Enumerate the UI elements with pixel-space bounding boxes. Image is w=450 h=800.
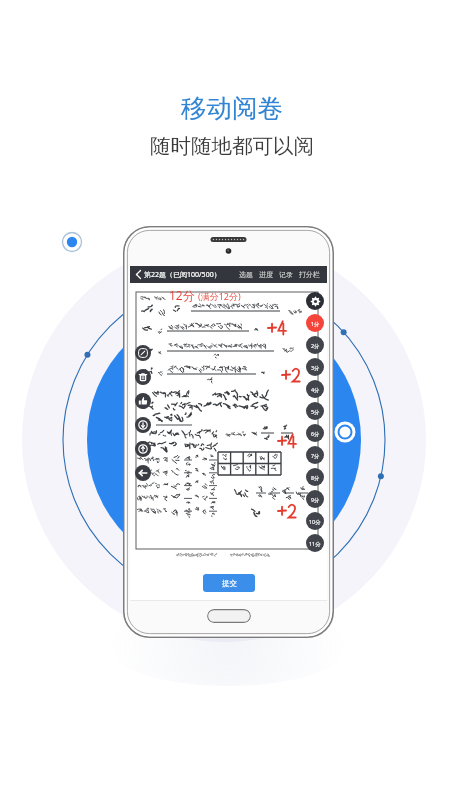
button[interactable]: Back — [135, 465, 151, 481]
button[interactable]: Settings — [306, 292, 324, 310]
staticText: 11分 — [309, 540, 321, 547]
button[interactable]: 提交 — [203, 574, 255, 592]
button[interactable]: Delete — [135, 369, 151, 385]
staticText: 4分 — [311, 386, 320, 393]
staticText: 第22题（已阅100/500） — [144, 270, 221, 280]
staticText: 打分栏 — [299, 270, 320, 279]
button[interactable]: 3分 — [306, 358, 324, 376]
staticText: 随时随地都可以阅 — [150, 133, 314, 159]
button[interactable]: Add score — [135, 417, 151, 433]
staticText: 移动阅卷 — [181, 92, 283, 124]
button[interactable]: Like — [135, 393, 151, 409]
staticText: 5分 — [311, 408, 320, 415]
staticText: 12分 — [169, 287, 195, 303]
staticText: 8分 — [311, 474, 320, 481]
staticText: 提交 — [222, 579, 237, 588]
button[interactable]: 1分 — [306, 314, 324, 332]
button[interactable]: Pen — [135, 345, 151, 361]
button[interactable]: 进度 — [256, 270, 276, 279]
button[interactable]: Back — [134, 270, 143, 279]
button[interactable]: 打分栏 — [296, 270, 323, 279]
staticText: 进度 — [259, 270, 273, 279]
staticText: 2分 — [311, 342, 320, 349]
staticText: 选题 — [239, 270, 253, 279]
staticText: 9分 — [311, 496, 320, 503]
button[interactable]: 8分 — [306, 468, 324, 486]
staticText: 记录 — [279, 270, 293, 279]
button[interactable]: 4分 — [306, 380, 324, 398]
button[interactable]: 5分 — [306, 402, 324, 420]
button[interactable]: 11分 — [306, 534, 324, 552]
button[interactable]: Minus score — [135, 441, 151, 457]
button[interactable]: 2分 — [306, 336, 324, 354]
button[interactable]: 记录 — [276, 270, 296, 279]
staticText: (满分12分) — [198, 290, 241, 302]
button[interactable]: 6分 — [306, 424, 324, 442]
staticText: 6分 — [311, 430, 320, 437]
button[interactable]: 7分 — [306, 446, 324, 464]
button[interactable]: 10分 — [306, 512, 324, 530]
button[interactable]: 9分 — [306, 490, 324, 508]
button[interactable]: 选题 — [236, 270, 256, 279]
staticText: 1分 — [311, 320, 320, 327]
staticText: 7分 — [311, 452, 320, 459]
staticText: 3分 — [311, 364, 320, 371]
staticText: 10分 — [309, 518, 321, 525]
